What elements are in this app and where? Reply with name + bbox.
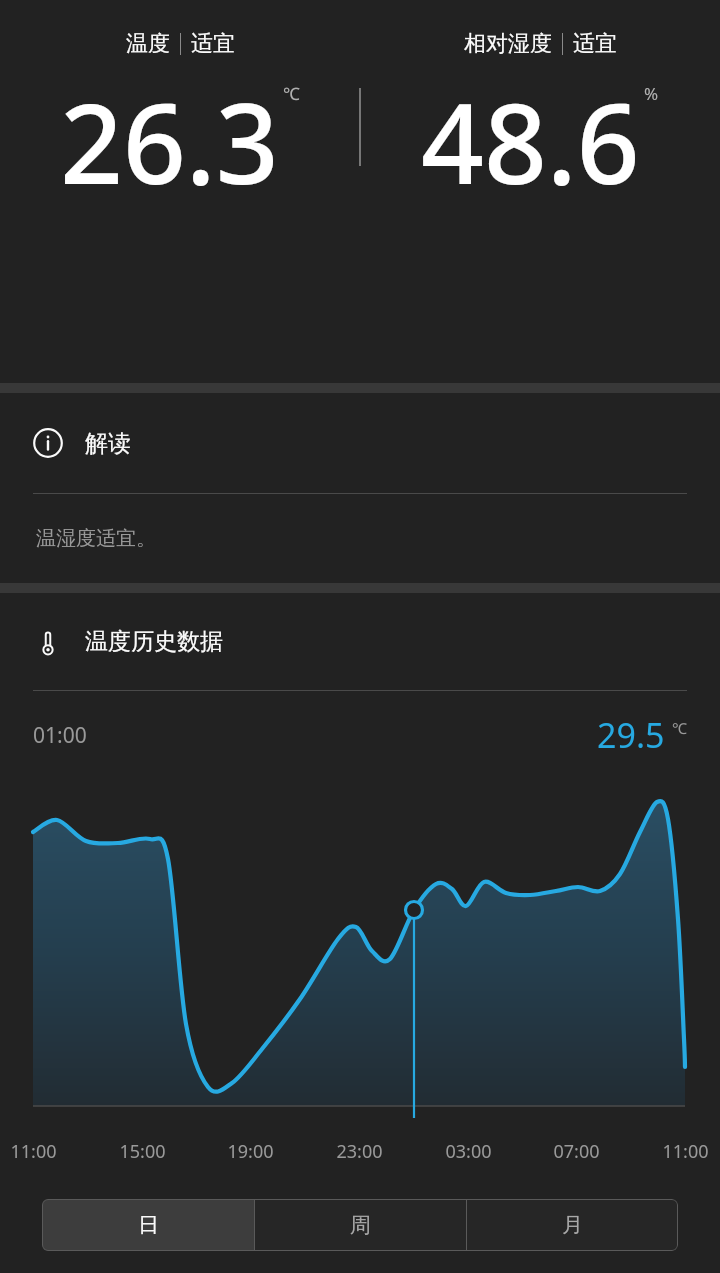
staticText: 11:00: [10, 1139, 57, 1164]
staticText: 07:00: [553, 1139, 600, 1164]
staticText: %: [644, 82, 659, 105]
staticText: 适宜: [191, 30, 235, 58]
staticText: 19:00: [227, 1139, 274, 1164]
staticText: 48.6: [421, 66, 640, 216]
staticText: 温湿度适宜。: [36, 526, 156, 551]
staticText: 15:00: [119, 1139, 166, 1164]
staticText: 01:00: [33, 721, 87, 750]
button[interactable]: 周: [255, 1199, 466, 1251]
staticText: ℃: [283, 82, 300, 105]
staticText: 解读: [85, 429, 131, 458]
staticText: 周: [350, 1212, 371, 1238]
staticText: 月: [562, 1212, 583, 1238]
staticText: 日: [138, 1212, 159, 1238]
staticText: 适宜: [573, 30, 617, 58]
button[interactable]: 日: [42, 1199, 254, 1251]
staticText: ℃: [672, 718, 687, 738]
staticText: 03:00: [445, 1139, 492, 1164]
button[interactable]: 月: [467, 1199, 678, 1251]
staticText: 11:00: [662, 1139, 709, 1164]
staticText: 温度: [126, 30, 170, 58]
staticText: 29.5: [597, 712, 665, 758]
staticText: 温度历史数据: [85, 627, 223, 656]
staticText: 26.3: [60, 66, 279, 216]
staticText: 23:00: [336, 1139, 383, 1164]
staticText: 相对湿度: [464, 30, 552, 58]
